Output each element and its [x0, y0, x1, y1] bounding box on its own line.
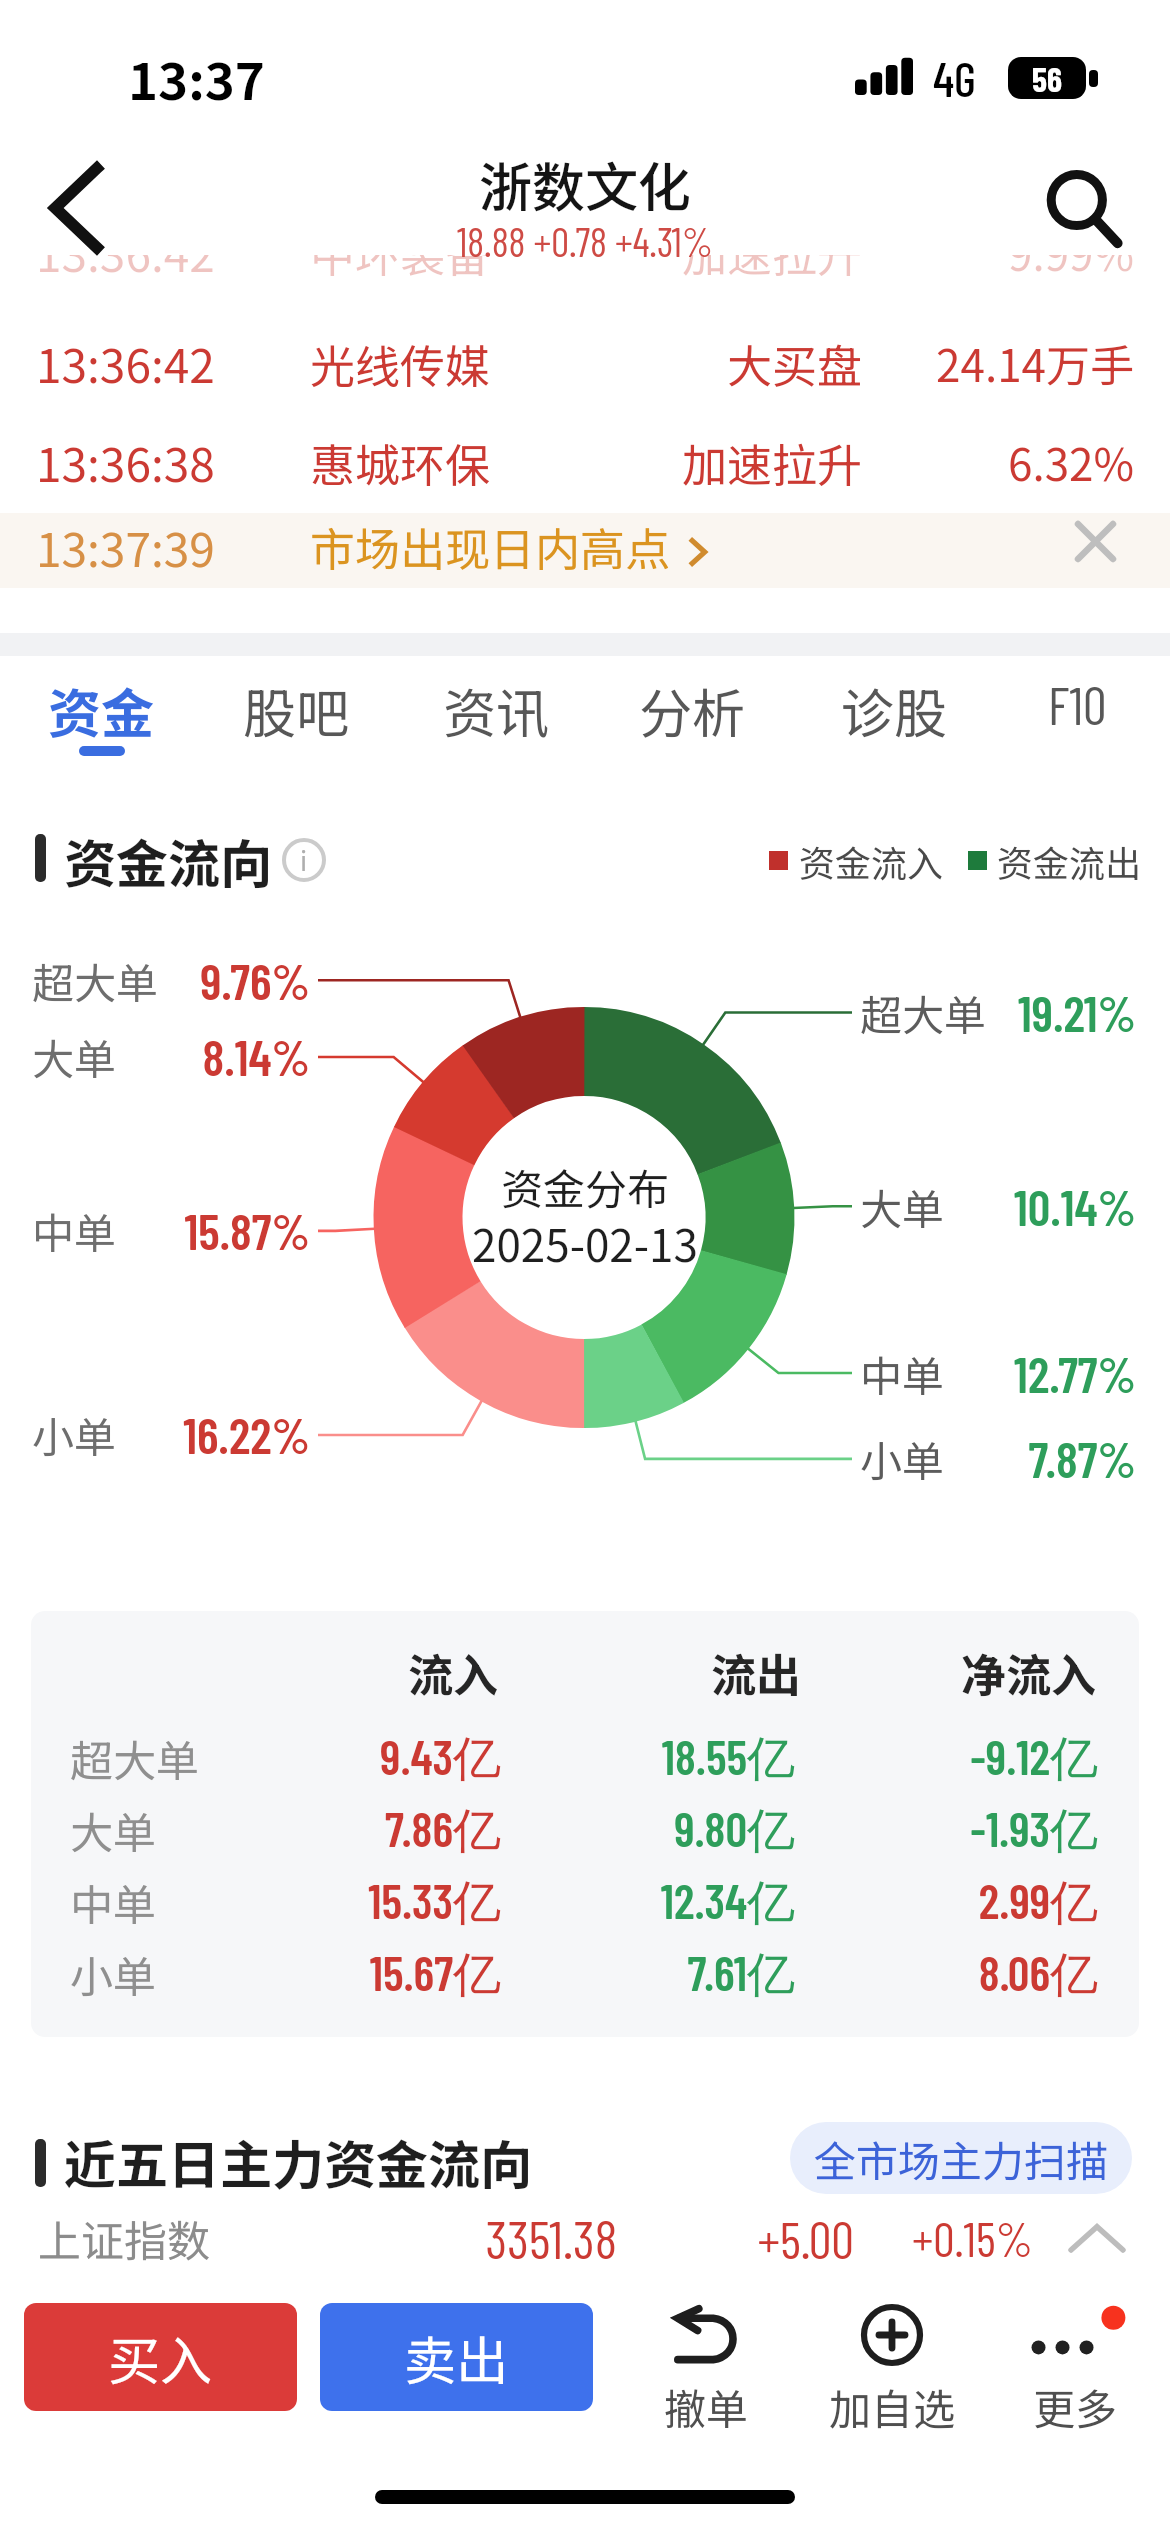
staticText: 小单: [32, 1404, 117, 1465]
staticText: 近五日主力资金流向: [64, 2124, 533, 2199]
staticText: 撤单: [664, 2376, 749, 2437]
button[interactable]: 资金: [11, 650, 191, 770]
button[interactable]: 分析: [602, 650, 782, 770]
button[interactable]: Info: [282, 838, 326, 882]
staticText: 15.33亿: [41, 1871, 501, 1933]
button[interactable]: 13:37:39: [0, 513, 1170, 588]
staticText: 2025-02-13: [472, 1211, 698, 1275]
staticText: 13:36:38: [36, 429, 215, 496]
staticText: 18.55亿: [335, 1727, 795, 1789]
staticText: 2.99亿: [638, 1871, 1098, 1933]
staticText: 10.14%: [676, 1176, 1136, 1236]
staticText: 卖出: [404, 2320, 509, 2395]
staticText: i: [300, 841, 308, 879]
staticText: 诊股: [841, 672, 947, 749]
staticText: 资金流出: [997, 835, 1142, 887]
staticText: 浙数文化: [479, 146, 691, 223]
staticText: 中单: [860, 1343, 945, 1404]
button[interactable]: 诊股: [804, 650, 984, 770]
staticText: 小单: [70, 1943, 156, 2005]
staticText: 流入: [38, 1640, 498, 1705]
staticText: 分析: [639, 672, 745, 749]
button[interactable]: Close: [1048, 504, 1142, 579]
staticText: 超大单: [860, 982, 987, 1043]
staticText: 18.88 +0.78 +4.31%: [457, 217, 714, 265]
button[interactable]: 更多: [985, 2290, 1165, 2420]
staticText: 超大单: [32, 950, 159, 1011]
staticText: 大单: [70, 1799, 156, 1861]
staticText: 上证指数: [38, 2207, 210, 2269]
staticText: 市场出现日内高点: [310, 514, 671, 579]
staticText: +0.15%: [573, 2209, 1033, 2267]
staticText: 资讯: [443, 672, 549, 749]
staticText: 9.43亿: [41, 1727, 501, 1789]
staticText: 7.87%: [676, 1428, 1136, 1488]
staticText: 大买盘: [402, 331, 862, 396]
button[interactable]: 加自选: [802, 2290, 982, 2420]
button[interactable]: Back: [20, 152, 132, 264]
staticText: 买入: [108, 2320, 213, 2395]
staticText: 15.87%: [0, 1200, 310, 1260]
staticText: 15.67亿: [41, 1943, 501, 2005]
staticText: -9.12亿: [638, 1727, 1098, 1789]
staticText: 9.76%: [0, 950, 310, 1010]
button[interactable]: 撤单: [616, 2290, 796, 2420]
staticText: 流出: [341, 1640, 801, 1705]
button[interactable]: 13:36:38: [0, 413, 1170, 512]
staticText: 8.06亿: [638, 1943, 1098, 2005]
staticText: 4G: [933, 49, 977, 107]
button[interactable]: 全市场主力扫描: [790, 2122, 1132, 2194]
staticText: 资金: [48, 672, 154, 749]
staticText: 中单: [32, 1200, 117, 1261]
staticText: 加自选: [829, 2376, 956, 2437]
staticText: 惠城环保: [310, 430, 491, 495]
button[interactable]: Search: [1028, 152, 1140, 264]
staticText: 12.34亿: [335, 1871, 795, 1933]
staticText: F10: [1048, 672, 1107, 736]
staticText: 24.14万手: [674, 331, 1134, 395]
staticText: 8.14%: [0, 1026, 310, 1086]
staticText: 中单: [70, 1871, 156, 1933]
staticText: 中环装备: [310, 255, 491, 285]
button[interactable]: 13:36:42: [0, 255, 1170, 302]
button[interactable]: 资讯: [406, 650, 586, 770]
staticText: 7.61亿: [335, 1943, 795, 2005]
staticText: 加速拉升: [402, 255, 862, 285]
staticText: 小单: [860, 1428, 945, 1489]
staticText: 16.22%: [0, 1404, 310, 1464]
staticText: 12.77%: [676, 1343, 1136, 1403]
staticText: 13:37: [128, 41, 265, 115]
staticText: 13:37:39: [36, 514, 215, 581]
staticText: 资金分布: [501, 1156, 670, 1217]
button[interactable]: 卖出: [320, 2303, 593, 2411]
staticText: 56: [1032, 58, 1062, 99]
staticText: 9.99%: [674, 255, 1134, 284]
staticText: 资金流向: [64, 823, 273, 898]
staticText: 光线传媒: [310, 331, 491, 396]
staticText: 9.80亿: [335, 1799, 795, 1861]
staticText: 净流入: [636, 1640, 1096, 1705]
staticText: 6.32%: [674, 430, 1134, 494]
staticText: +5.00: [394, 2208, 854, 2269]
staticText: 3351.38: [157, 2206, 617, 2270]
staticText: 全市场主力扫描: [814, 2128, 1109, 2189]
staticText: 19.21%: [676, 982, 1136, 1042]
staticText: 资金流入: [799, 835, 944, 887]
button[interactable]: 13:36:42: [0, 314, 1170, 413]
button[interactable]: F10: [987, 650, 1167, 770]
staticText: 7.86亿: [41, 1799, 501, 1861]
staticText: 13:36:42: [36, 330, 215, 397]
staticText: 股吧: [243, 672, 349, 749]
staticText: 超大单: [70, 1727, 199, 1789]
staticText: 13:36:42: [36, 255, 215, 286]
staticText: -1.93亿: [638, 1799, 1098, 1861]
staticText: 加速拉升: [402, 430, 862, 495]
button[interactable]: 股吧: [206, 650, 386, 770]
staticText: 更多: [1033, 2376, 1118, 2437]
button[interactable]: 买入: [24, 2303, 297, 2411]
staticText: 大单: [32, 1026, 117, 1087]
staticText: 大单: [860, 1176, 945, 1237]
button[interactable]: Collapse: [1057, 2198, 1137, 2278]
